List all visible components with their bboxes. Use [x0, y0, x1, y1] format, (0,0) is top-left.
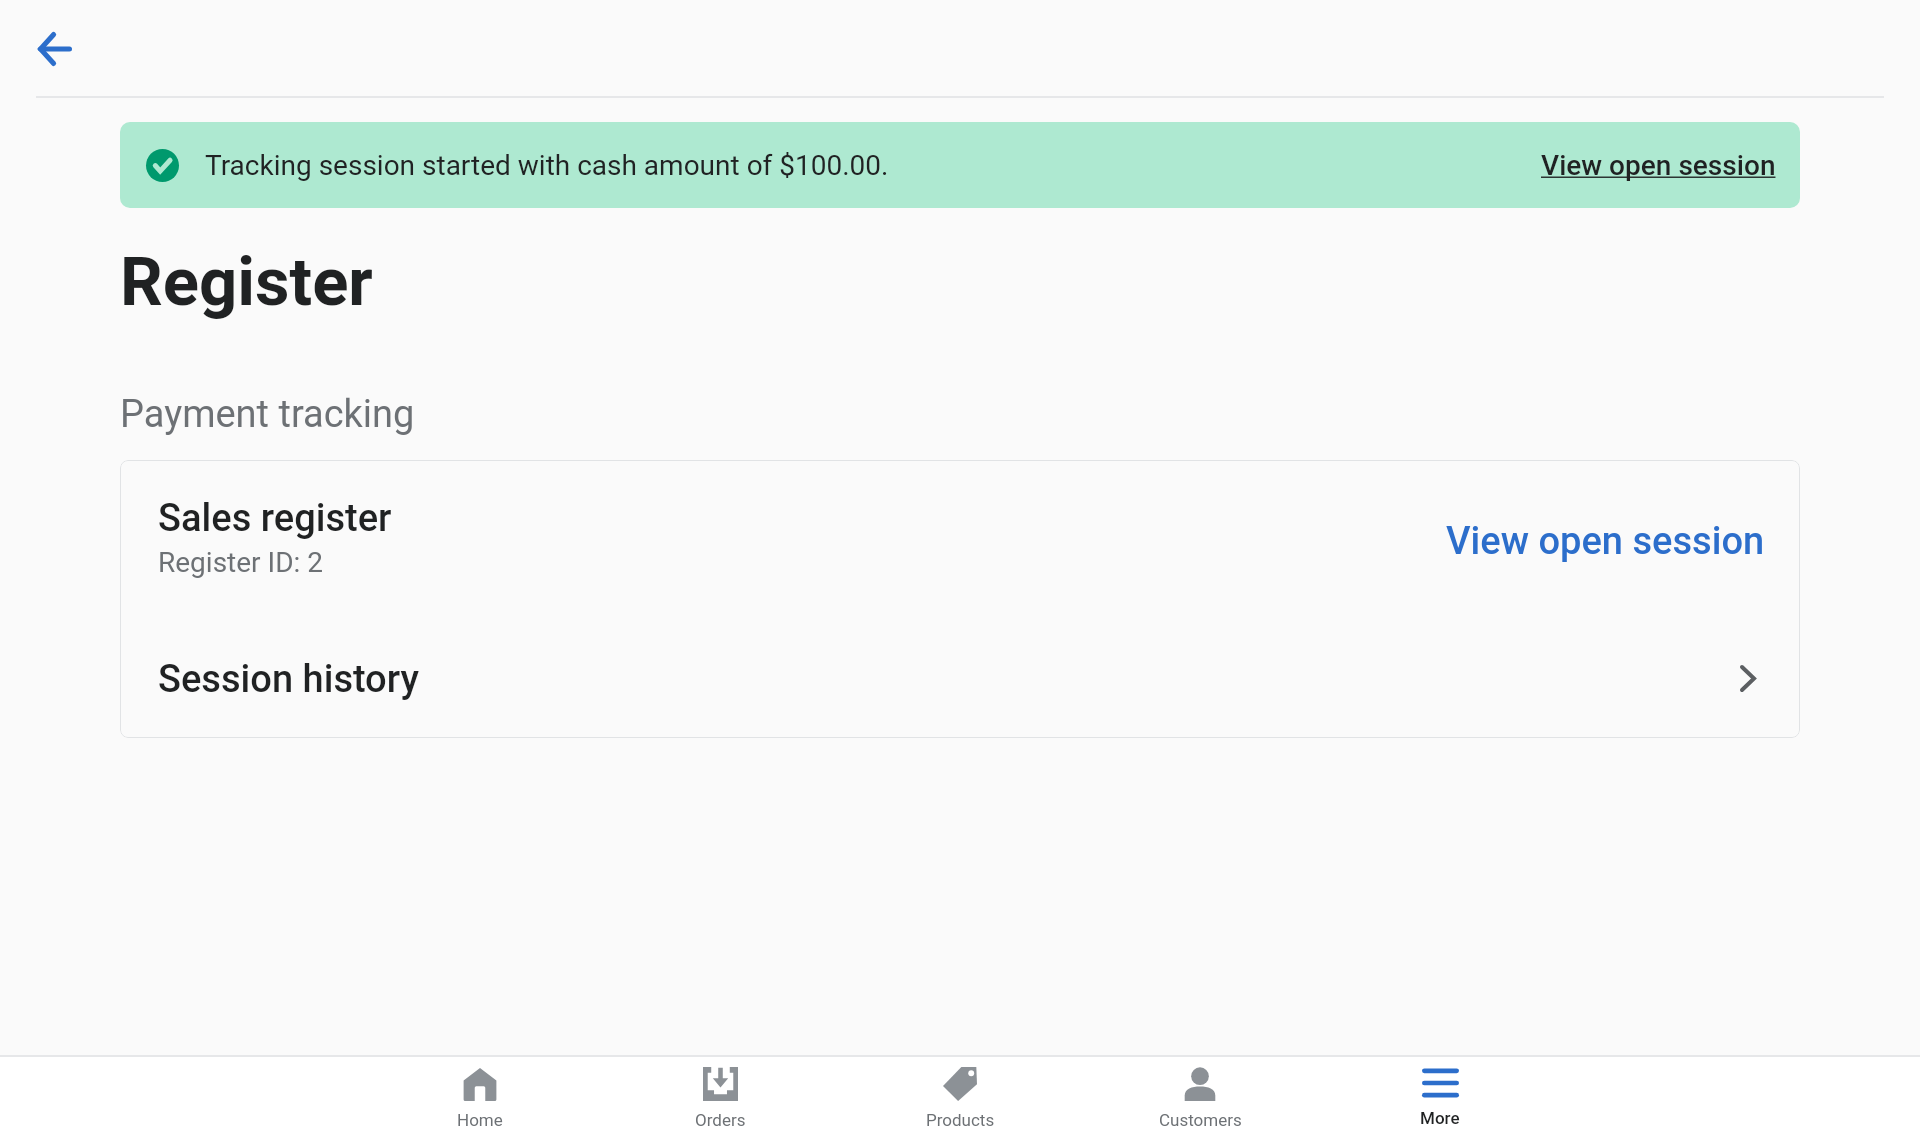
- staticText: Products: [926, 1110, 995, 1130]
- staticText: Session history: [158, 657, 419, 702]
- button[interactable]: Products: [840, 1057, 1080, 1141]
- staticText: View open session: [1541, 149, 1776, 182]
- other: Open session history: [1740, 665, 1756, 692]
- staticText: Register ID: 2: [158, 546, 323, 579]
- button[interactable]: View open session: [1541, 149, 1776, 182]
- button[interactable]: Orders: [600, 1057, 840, 1141]
- staticText: Payment tracking: [120, 392, 415, 437]
- staticText: More: [1420, 1108, 1460, 1128]
- button[interactable]: Customers: [1080, 1057, 1320, 1141]
- staticText: View open session: [1446, 519, 1765, 564]
- staticText: Tracking session started with cash amoun…: [205, 149, 889, 182]
- staticText: Sales register: [158, 496, 392, 541]
- button[interactable]: Back: [23, 17, 87, 81]
- button[interactable]: More: [1320, 1057, 1560, 1141]
- button[interactable]: Session history: [120, 619, 1800, 738]
- button[interactable]: Home: [360, 1057, 600, 1141]
- staticText: Register: [120, 243, 373, 322]
- staticText: Home: [457, 1110, 503, 1130]
- button[interactable]: Sales register: [120, 460, 1800, 619]
- staticText: Orders: [695, 1110, 746, 1130]
- staticText: Customers: [1159, 1110, 1242, 1130]
